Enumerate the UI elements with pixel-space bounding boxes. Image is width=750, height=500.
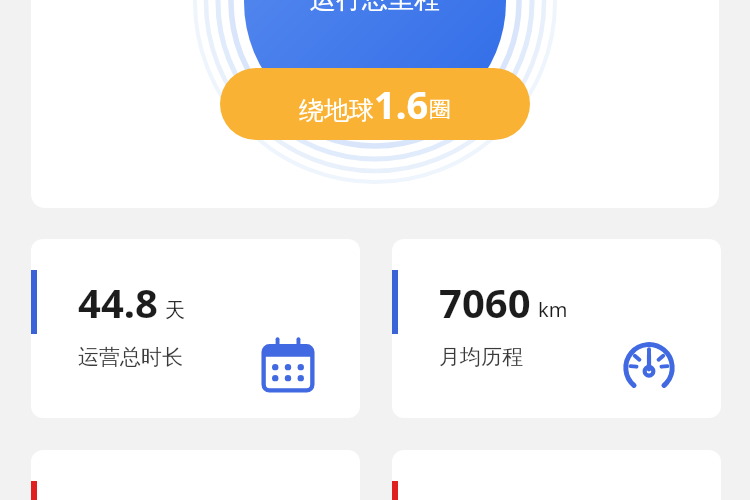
staticText: 圈 bbox=[429, 96, 451, 124]
button[interactable]: 18400 bbox=[31, 450, 360, 500]
other: Calendar bbox=[259, 337, 317, 395]
button[interactable]: 44.8 bbox=[31, 239, 360, 418]
staticText: 7060 bbox=[439, 275, 531, 329]
other: Speed gauge bbox=[620, 337, 678, 395]
button[interactable]: 44 bbox=[392, 450, 721, 500]
staticText: 运营总时长 bbox=[78, 344, 183, 370]
staticText: 月均历程 bbox=[439, 344, 523, 370]
staticText: 1.6 bbox=[374, 78, 429, 130]
button[interactable]: 绕地球 bbox=[220, 68, 530, 140]
staticText: 运行总里程 bbox=[310, 0, 440, 16]
staticText: 天 bbox=[165, 298, 185, 323]
button[interactable]: 7060 bbox=[392, 239, 721, 418]
staticText: km bbox=[538, 296, 568, 323]
staticText: 绕地球 bbox=[299, 95, 374, 126]
staticText: 44.8 bbox=[78, 275, 158, 329]
button[interactable]: 运行总里程 bbox=[31, 0, 719, 208]
